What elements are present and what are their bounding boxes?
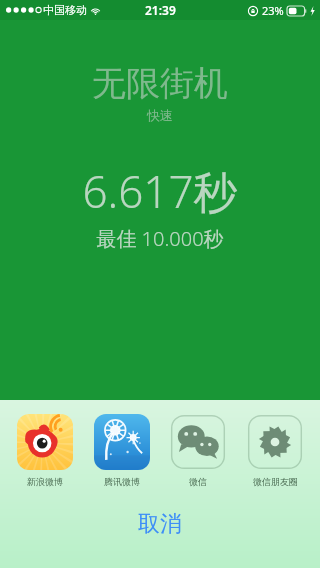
staticText: 腾讯微博 [104, 476, 140, 487]
staticText: 最佳 10.000秒 [96, 225, 224, 252]
staticText: 微信 [189, 476, 207, 487]
staticText: 新浪微博 [27, 476, 63, 487]
button[interactable]: 腾讯微博 [91, 414, 153, 487]
staticText: 微信朋友圈 [253, 476, 298, 487]
staticText: 取消 [138, 510, 182, 538]
button[interactable]: 微信朋友圈 [244, 414, 306, 487]
staticText: 23% [262, 3, 284, 18]
staticText: 快速 [147, 107, 173, 123]
button[interactable]: 新浪微博 [14, 414, 76, 487]
staticText: 无限街机 [92, 62, 228, 105]
button[interactable]: 微信 [167, 414, 229, 487]
button[interactable]: 取消 [0, 501, 320, 547]
staticText: 中国移动 [43, 3, 87, 17]
staticText: 6.617秒 [82, 161, 238, 221]
staticText: 21:39 [145, 2, 176, 18]
